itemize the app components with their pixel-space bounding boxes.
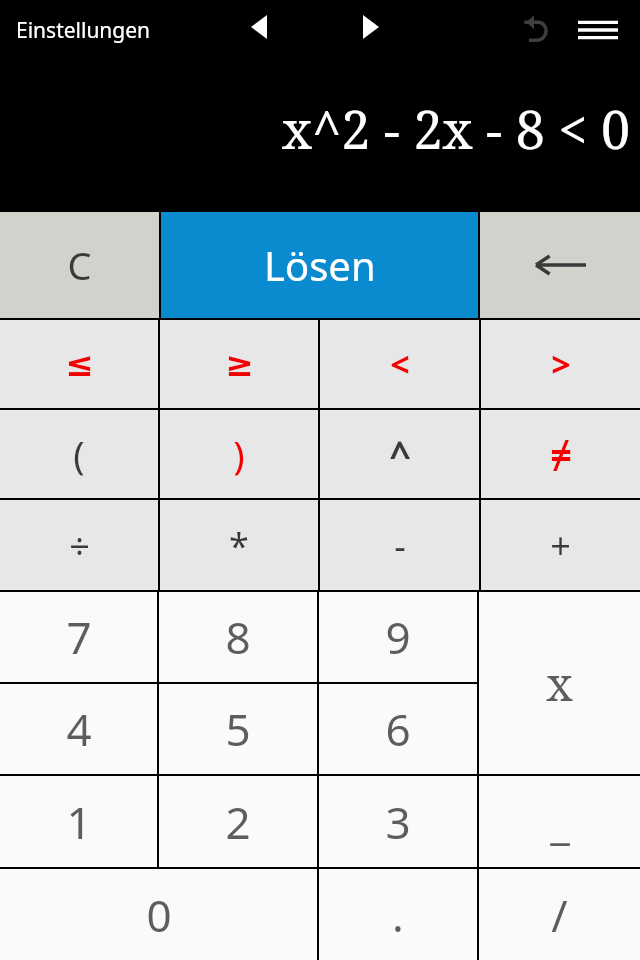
staticText: . — [392, 885, 404, 945]
button[interactable]: + — [481, 500, 640, 590]
button[interactable]: - — [320, 500, 479, 590]
button[interactable]: Undo — [506, 0, 562, 56]
button[interactable]: ( — [0, 410, 158, 498]
button[interactable]: Einstellungen — [10, 10, 157, 51]
button[interactable]: 1 — [0, 776, 157, 867]
staticText: ÷ — [69, 521, 90, 570]
staticText: 0 — [146, 885, 172, 945]
button[interactable]: C — [0, 212, 159, 318]
button[interactable]: Previous — [232, 0, 286, 54]
button[interactable]: > — [481, 320, 640, 408]
staticText: 1 — [66, 792, 92, 852]
staticText: < — [390, 341, 410, 387]
staticText: * — [229, 521, 249, 570]
staticText: Einstellungen — [16, 16, 151, 45]
button[interactable]: / — [479, 869, 640, 960]
button[interactable]: ≠ — [481, 410, 640, 498]
staticText: + — [550, 521, 571, 570]
button[interactable]: 3 — [319, 776, 477, 867]
button[interactable]: ) — [160, 410, 318, 498]
button[interactable]: 6 — [319, 684, 477, 774]
staticText: x — [546, 652, 573, 715]
button[interactable]: Lösen — [161, 212, 478, 318]
staticText: 5 — [225, 699, 251, 759]
button[interactable]: ≤ — [0, 320, 158, 408]
staticText: - — [394, 521, 406, 570]
staticText: ≥ — [225, 344, 254, 384]
staticText: Lösen — [264, 238, 376, 292]
staticText: 6 — [385, 699, 411, 759]
staticText: 2 — [225, 792, 251, 852]
button[interactable]: 9 — [319, 592, 477, 682]
staticText: ≤ — [65, 344, 94, 384]
button[interactable]: _ — [479, 776, 640, 867]
button[interactable]: 0 — [0, 869, 317, 960]
button[interactable]: ≥ — [160, 320, 318, 408]
button[interactable]: < — [320, 320, 479, 408]
button[interactable]: 2 — [159, 776, 317, 867]
button[interactable]: Menu — [568, 0, 628, 60]
button[interactable]: Next — [344, 0, 398, 54]
staticText: ) — [233, 428, 245, 480]
staticText: x^2 - 2x - 8 < 0 — [282, 93, 630, 164]
staticText: C — [67, 239, 92, 291]
button[interactable]: ÷ — [0, 500, 158, 590]
staticText: ( — [73, 428, 85, 480]
button[interactable]: ^ — [320, 410, 479, 498]
staticText: 9 — [385, 607, 411, 667]
button[interactable]: . — [319, 869, 477, 960]
staticText: > — [551, 341, 571, 387]
staticText: ^ — [389, 428, 411, 480]
staticText: 8 — [225, 607, 251, 667]
button[interactable]: 5 — [159, 684, 317, 774]
staticText: 4 — [66, 699, 92, 759]
button[interactable]: x — [479, 592, 640, 774]
button[interactable]: 8 — [159, 592, 317, 682]
staticText: 7 — [66, 607, 92, 667]
button[interactable]: 4 — [0, 684, 157, 774]
button[interactable]: * — [160, 500, 318, 590]
button[interactable]: Backspace — [480, 212, 640, 318]
staticText: 3 — [385, 792, 411, 852]
staticText: _ — [550, 792, 570, 852]
staticText: ≠ — [550, 428, 572, 480]
button[interactable]: 7 — [0, 592, 157, 682]
staticText: / — [551, 885, 568, 945]
